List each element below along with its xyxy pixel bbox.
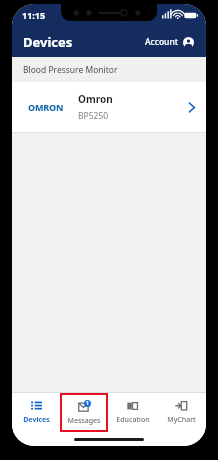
- button[interactable]: Messages: [62, 395, 106, 430]
- staticText: 1: [86, 400, 89, 407]
- button[interactable]: Account: [143, 34, 196, 50]
- staticText: Blood Pressure Monitor: [23, 64, 118, 76]
- button[interactable]: MyChart: [157, 392, 206, 432]
- other: Devices: [30, 399, 43, 412]
- staticText: 11:15: [22, 9, 46, 21]
- staticText: Messages: [67, 416, 101, 426]
- staticText: Devices: [23, 33, 73, 51]
- other: Education: [126, 399, 139, 412]
- staticText: Education: [116, 415, 150, 425]
- staticText: Account: [145, 36, 179, 48]
- button[interactable]: Devices: [12, 392, 60, 432]
- button[interactable]: Education: [108, 392, 157, 432]
- staticText: BP5250: [78, 110, 109, 122]
- button[interactable]: OMRON: [12, 82, 206, 132]
- staticText: OMRON: [28, 101, 64, 113]
- staticText: Devices: [23, 415, 50, 425]
- staticText: MyChart: [167, 415, 196, 425]
- staticText: Omron: [78, 92, 113, 106]
- other: Messages: [78, 400, 91, 413]
- other: MyChart: [175, 399, 188, 412]
